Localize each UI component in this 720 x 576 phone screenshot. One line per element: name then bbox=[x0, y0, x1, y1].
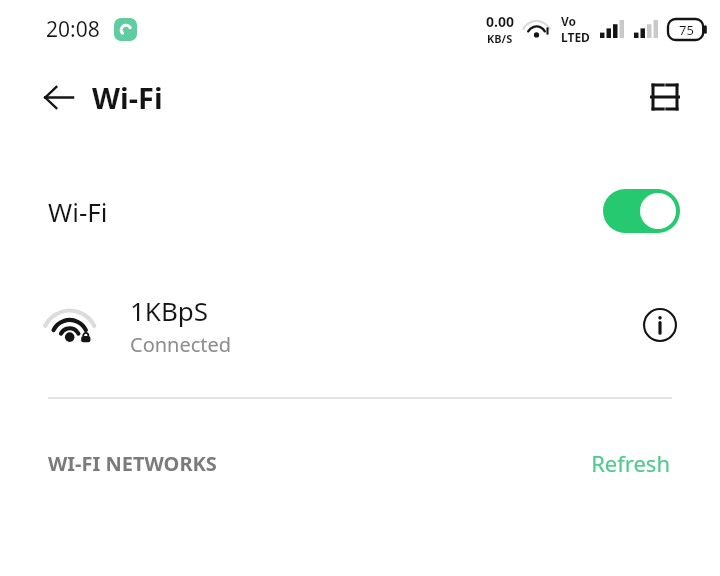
button[interactable]: Wi-Fi bbox=[0, 180, 720, 242]
staticText: Vo bbox=[561, 13, 577, 29]
staticText: Wi-Fi bbox=[92, 78, 163, 117]
staticText: LTED bbox=[561, 29, 590, 45]
staticText: WI-FI NETWORKS bbox=[48, 450, 217, 477]
button[interactable]: Network details bbox=[634, 299, 686, 351]
button[interactable]: Scan QR code to add network bbox=[638, 70, 692, 124]
button[interactable]: 1KBpS bbox=[0, 286, 720, 364]
staticText: Refresh bbox=[591, 448, 670, 478]
button[interactable]: Wi-Fi on bbox=[603, 189, 680, 233]
staticText: 1KBpS bbox=[130, 293, 209, 328]
staticText: 20:08 bbox=[46, 15, 100, 44]
staticText: 75 bbox=[679, 21, 694, 39]
staticText: Connected bbox=[130, 331, 232, 358]
staticText: Wi-Fi bbox=[48, 194, 108, 229]
staticText: KB/S bbox=[487, 31, 513, 46]
staticText: 0.00 bbox=[486, 12, 514, 31]
button[interactable]: Back bbox=[30, 69, 86, 125]
button[interactable]: Refresh bbox=[587, 444, 674, 482]
